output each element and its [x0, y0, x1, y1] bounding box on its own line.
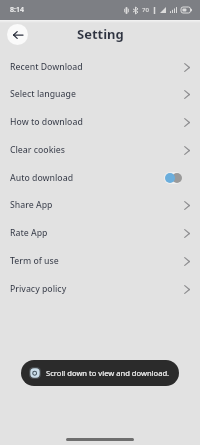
button[interactable]: Rate App: [0, 222, 200, 244]
staticText: 70: [142, 6, 149, 14]
button[interactable]: Scroll down to view and download.: [21, 360, 179, 386]
staticText: Share App: [10, 199, 53, 211]
staticText: How to download: [10, 116, 83, 128]
button[interactable]: Clear cookies: [0, 139, 200, 161]
staticText: Setting: [77, 25, 124, 43]
staticText: Rate App: [10, 227, 48, 239]
button[interactable]: Back: [7, 24, 28, 45]
button[interactable]: How to download: [0, 111, 200, 133]
staticText: Recent Download: [10, 61, 83, 73]
staticText: 8:14: [10, 5, 24, 15]
staticText: Privacy policy: [10, 283, 67, 295]
staticText: Select language: [10, 88, 76, 100]
button[interactable]: Share App: [0, 194, 200, 216]
button[interactable]: Select language: [0, 83, 200, 105]
button[interactable]: Privacy policy: [0, 278, 200, 300]
button[interactable]: Auto download: [0, 167, 200, 189]
staticText: Scroll down to view and download.: [46, 368, 170, 378]
staticText: Clear cookies: [10, 144, 66, 156]
staticText: Auto download: [10, 172, 74, 184]
button[interactable]: Term of use: [0, 250, 200, 272]
staticText: Term of use: [10, 255, 59, 267]
button[interactable]: Recent Download: [0, 56, 200, 78]
